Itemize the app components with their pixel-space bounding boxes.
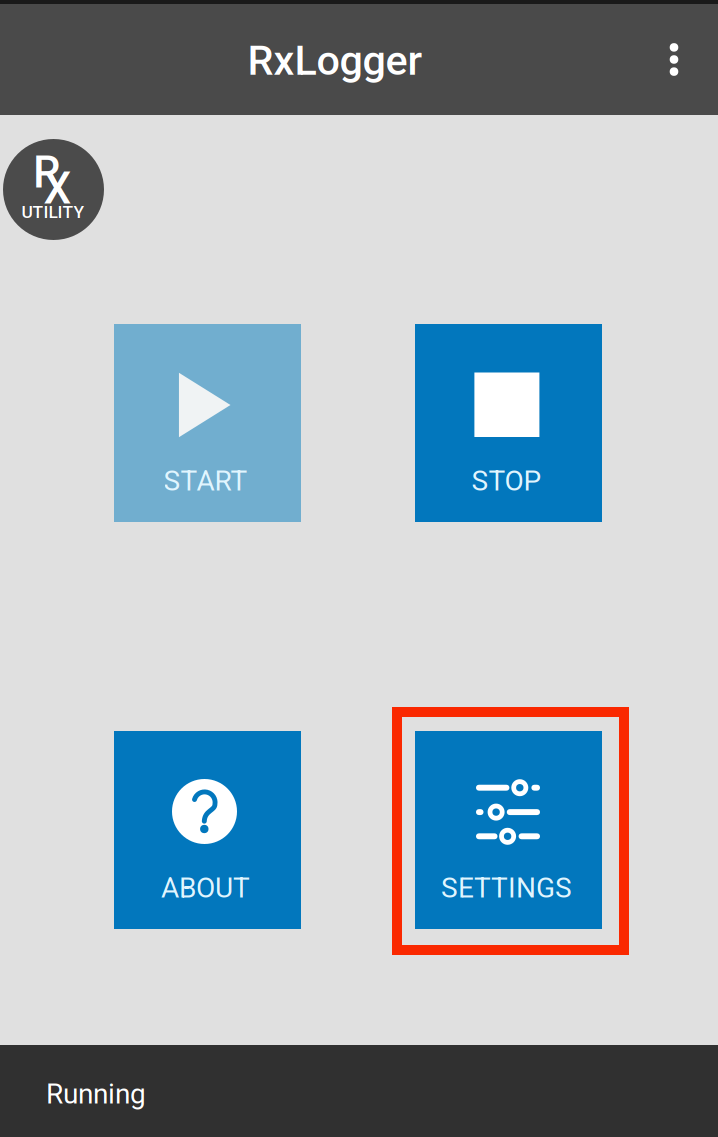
staticText: START bbox=[163, 465, 247, 497]
staticText: R bbox=[33, 147, 61, 198]
staticText: ABOUT bbox=[161, 872, 250, 904]
staticText: UTILITY bbox=[21, 202, 84, 222]
staticText: STOP bbox=[471, 465, 541, 497]
staticText: X bbox=[43, 163, 71, 214]
button[interactable]: SETTINGS bbox=[392, 707, 629, 955]
staticText: Running bbox=[46, 1078, 146, 1110]
button[interactable]: STOP bbox=[415, 324, 602, 522]
button[interactable]: ABOUT bbox=[114, 731, 301, 929]
staticText: SETTINGS bbox=[441, 872, 572, 904]
button[interactable]: More options bbox=[643, 4, 705, 115]
staticText: RxLogger bbox=[247, 36, 422, 85]
button[interactable]: START bbox=[114, 324, 301, 522]
